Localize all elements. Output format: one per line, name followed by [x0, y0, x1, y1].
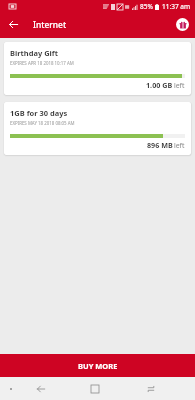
staticText: Internet [33, 19, 67, 30]
button[interactable]: Home [83, 377, 107, 400]
staticText: 85% [140, 2, 153, 11]
staticText: 1.00 GB [146, 80, 173, 90]
button[interactable]: Back [0, 12, 27, 37]
button[interactable]: Recent apps [139, 377, 163, 400]
staticText: left [174, 141, 185, 150]
staticText: 896 MB [147, 140, 173, 150]
button[interactable]: BUY MORE [0, 354, 195, 377]
staticText: Birthday Gift [10, 48, 59, 58]
staticText: 11:37 am [162, 2, 191, 11]
button[interactable]: Gift offers [170, 12, 194, 37]
staticText: left [174, 81, 185, 90]
staticText: 1GB for 30 days [10, 108, 68, 118]
staticText: EXPIRES APR 18 2018 10:17 AM [10, 60, 74, 66]
button[interactable]: 1GB for 30 days [4, 102, 191, 155]
button[interactable]: Birthday Gift [4, 42, 191, 95]
button[interactable]: Back [29, 377, 53, 400]
button[interactable]: Show keyboard [3, 377, 19, 400]
staticText: EXPIRES MAY 18 2018 08:05 AM [10, 120, 75, 126]
staticText: BUY MORE [78, 361, 118, 371]
